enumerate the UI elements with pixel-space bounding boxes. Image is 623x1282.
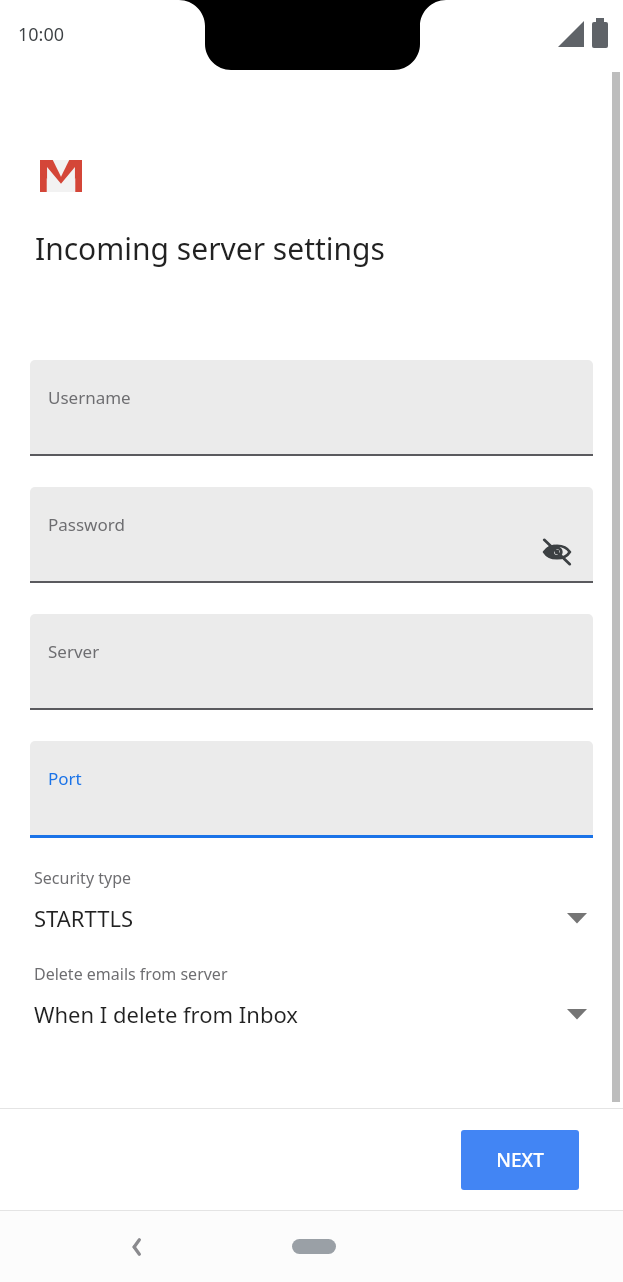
button[interactable]: Security type (0, 867, 623, 939)
button[interactable]: Username (30, 360, 593, 456)
button[interactable]: Server (30, 614, 593, 710)
staticText: Server (48, 640, 100, 663)
button[interactable]: Delete emails from server (0, 963, 623, 1035)
button[interactable]: Show password (535, 530, 579, 574)
staticText: Incoming server settings (35, 228, 385, 269)
staticText: When I delete from Inbox (34, 999, 567, 1029)
staticText: NEXT (496, 1147, 544, 1173)
button[interactable]: NEXT (461, 1130, 579, 1190)
button[interactable]: Port (30, 741, 593, 838)
staticText: Port (48, 767, 82, 790)
button[interactable]: Password (30, 487, 593, 583)
staticText: Delete emails from server (34, 963, 228, 985)
staticText: Security type (34, 867, 132, 889)
staticText: Password (48, 513, 125, 536)
staticText: Username (48, 386, 131, 409)
button[interactable]: Back (108, 1211, 163, 1282)
button[interactable]: Home (278, 1221, 350, 1272)
staticText: 10:00 (18, 22, 65, 47)
staticText: STARTTLS (34, 903, 567, 933)
